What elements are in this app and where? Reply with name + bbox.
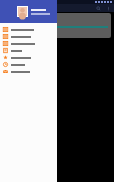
button[interactable] (0, 61, 57, 68)
button[interactable] (0, 54, 57, 61)
button[interactable] (0, 40, 57, 47)
button[interactable] (0, 0, 57, 23)
button[interactable] (0, 26, 57, 33)
button[interactable] (0, 68, 57, 75)
button[interactable] (0, 47, 57, 54)
button[interactable] (0, 33, 57, 40)
button[interactable]: More options (106, 6, 111, 11)
button[interactable]: Search (96, 6, 101, 11)
